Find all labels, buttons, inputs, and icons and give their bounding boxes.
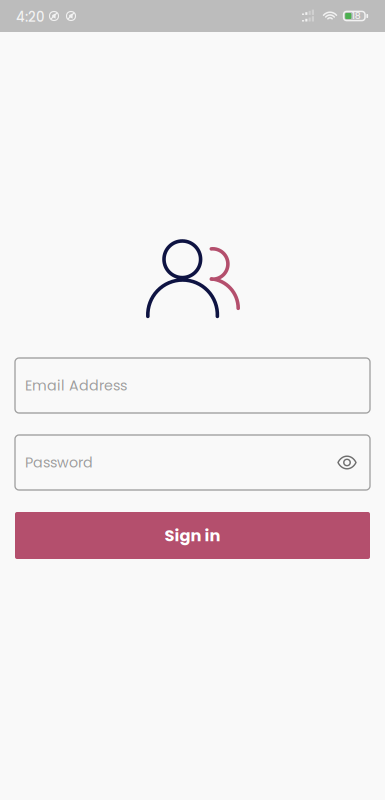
staticText: Sign in [164,524,220,547]
button[interactable]: Show password [325,443,370,481]
staticText: Password [25,452,93,472]
staticText: Email Address [25,375,127,395]
button[interactable]: Sign in [15,512,370,559]
staticText: 18 [352,9,361,22]
staticText: 4:20 [16,8,45,26]
